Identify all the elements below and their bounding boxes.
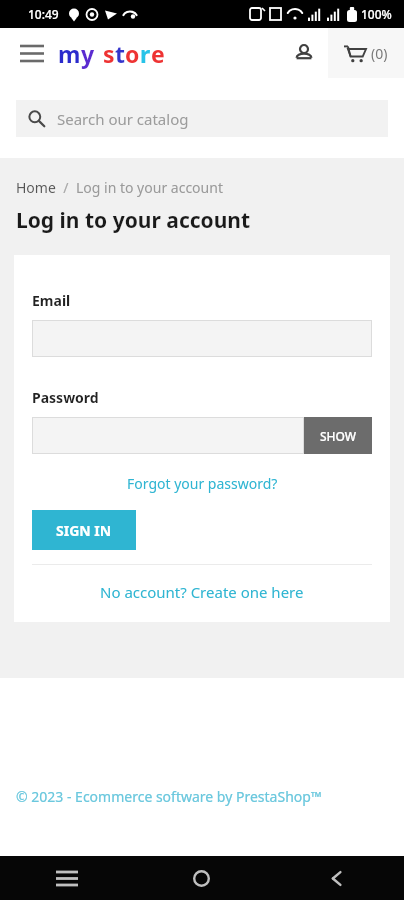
staticText: Log in to your account — [16, 206, 251, 235]
staticText: Password — [32, 388, 99, 407]
button[interactable]: Forgot your password? — [127, 474, 278, 493]
button[interactable]: Search our catalog — [16, 100, 388, 137]
button[interactable]: Home — [134, 856, 269, 900]
button[interactable]: SIGN IN — [32, 510, 136, 550]
button[interactable]: No account? Create one here — [100, 582, 304, 602]
staticText: Search our catalog — [57, 109, 189, 129]
staticText: SIGN IN — [56, 521, 112, 540]
staticText: s — [103, 38, 115, 69]
staticText: Home — [16, 178, 56, 197]
staticText: © 2023 - Ecommerce software by PrestaSho… — [16, 787, 322, 806]
button[interactable]: Menu — [10, 31, 54, 75]
staticText: e — [151, 38, 165, 69]
staticText: Forgot your password? — [127, 474, 278, 493]
staticText: No account? Create one here — [100, 582, 304, 602]
button[interactable] — [32, 417, 304, 454]
staticText: 10:49 — [28, 6, 59, 22]
staticText: y — [81, 38, 95, 69]
button[interactable]: Home — [16, 178, 56, 197]
button[interactable]: (0) — [328, 28, 404, 78]
staticText: SHOW — [320, 428, 357, 444]
button[interactable]: Account — [280, 29, 328, 77]
staticText: Log in to your account — [76, 178, 223, 197]
staticText: 100% — [361, 6, 392, 22]
staticText: r — [140, 38, 151, 69]
staticText: o — [125, 38, 140, 69]
button[interactable]: Recents — [0, 856, 134, 900]
staticText: t — [115, 38, 125, 69]
button[interactable] — [32, 320, 372, 357]
staticText: / — [56, 178, 76, 197]
button[interactable]: Back — [269, 856, 404, 900]
staticText: m — [58, 38, 81, 69]
staticText: (0) — [371, 44, 388, 63]
button[interactable]: SHOW — [304, 417, 372, 454]
staticText: Email — [32, 291, 71, 310]
